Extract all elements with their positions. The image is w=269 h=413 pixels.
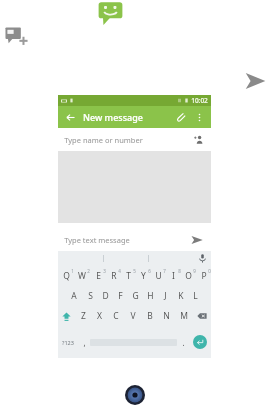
button[interactable]: V	[124, 306, 141, 326]
button[interactable]: C	[107, 306, 124, 326]
button[interactable]: New message	[5, 25, 29, 49]
staticText: Type text message	[64, 235, 130, 245]
staticText: W	[78, 270, 86, 282]
button[interactable]: M	[175, 306, 192, 326]
staticText: K	[178, 290, 184, 302]
button[interactable]: ?123	[58, 326, 78, 358]
button[interactable]: T	[121, 266, 136, 286]
button[interactable]: Shift	[58, 306, 75, 326]
button[interactable]: Attach	[174, 110, 189, 125]
staticText: T	[126, 270, 131, 282]
staticText: L	[193, 290, 198, 302]
staticText: B	[147, 310, 153, 322]
button[interactable]: A	[66, 286, 82, 306]
staticText: J	[164, 290, 167, 302]
staticText: 5	[133, 268, 136, 274]
button[interactable]: Send	[244, 70, 266, 92]
staticText: New message	[83, 111, 143, 123]
button[interactable]: App icon	[125, 385, 145, 405]
staticText: 4	[118, 268, 121, 274]
staticText: D	[102, 290, 109, 302]
button[interactable]: Add contact	[192, 133, 205, 146]
staticText: ?123	[62, 339, 74, 346]
staticText: 3	[103, 268, 106, 274]
button[interactable]: D	[98, 286, 113, 306]
button[interactable]: Space	[90, 331, 177, 353]
button[interactable]: More options	[192, 110, 206, 124]
staticText: N	[163, 310, 170, 322]
button[interactable]: K	[173, 286, 188, 306]
button[interactable]: Z	[75, 306, 91, 326]
staticText: P	[201, 270, 207, 282]
button[interactable]: Send message	[189, 232, 205, 248]
staticText: I	[172, 270, 175, 282]
staticText: Y	[141, 270, 146, 282]
staticText: C	[113, 310, 119, 322]
button[interactable]: Voice input	[193, 251, 211, 266]
button[interactable]: Y	[136, 266, 151, 286]
staticText: H	[147, 290, 154, 302]
button[interactable]: ,	[78, 326, 90, 358]
staticText: E	[96, 270, 101, 282]
staticText: 9	[193, 268, 196, 274]
button[interactable]: U	[151, 266, 166, 286]
button[interactable]: J	[158, 286, 173, 306]
button[interactable]: H	[143, 286, 158, 306]
staticText: V	[130, 310, 136, 322]
button[interactable]: B	[141, 306, 158, 326]
button[interactable]: P	[196, 266, 211, 286]
staticText: U	[155, 270, 162, 282]
button[interactable]: Backspace	[192, 306, 211, 326]
button[interactable]: G	[128, 286, 143, 306]
staticText: 7	[163, 268, 166, 274]
button[interactable]: F	[113, 286, 128, 306]
button[interactable]: R	[106, 266, 121, 286]
button[interactable]: X	[91, 306, 107, 326]
button[interactable]: .	[177, 326, 189, 358]
staticText: 10:02	[191, 96, 208, 105]
button[interactable]: Type name or number	[58, 128, 211, 151]
staticText: 1	[71, 268, 74, 274]
button[interactable]: I	[166, 266, 181, 286]
staticText: R	[111, 270, 117, 282]
button[interactable]: E	[90, 266, 106, 286]
button[interactable]: S	[82, 286, 98, 306]
staticText: X	[97, 310, 102, 322]
staticText: F	[118, 290, 123, 302]
button[interactable]: Messaging	[97, 0, 124, 27]
button[interactable]: Enter	[189, 326, 211, 358]
staticText: .	[182, 337, 185, 348]
staticText: Q	[63, 270, 70, 282]
button[interactable]: O	[181, 266, 196, 286]
staticText: ,	[83, 337, 86, 348]
button[interactable]: Back	[63, 110, 77, 124]
button[interactable]: Type text message	[58, 228, 211, 251]
staticText: O	[185, 270, 192, 282]
staticText: 0	[208, 268, 211, 274]
button[interactable]: W	[74, 266, 90, 286]
staticText: Type name or number	[64, 135, 143, 145]
staticText: G	[132, 290, 139, 302]
button[interactable]: N	[158, 306, 175, 326]
staticText: M	[180, 310, 188, 322]
staticText: S	[88, 290, 93, 302]
staticText: 8	[178, 268, 181, 274]
staticText: 6	[148, 268, 151, 274]
staticText: A	[71, 290, 77, 302]
button[interactable]: L	[188, 286, 203, 306]
button[interactable]: Q	[58, 266, 74, 286]
staticText: Z	[81, 310, 86, 322]
staticText: 2	[87, 268, 90, 274]
